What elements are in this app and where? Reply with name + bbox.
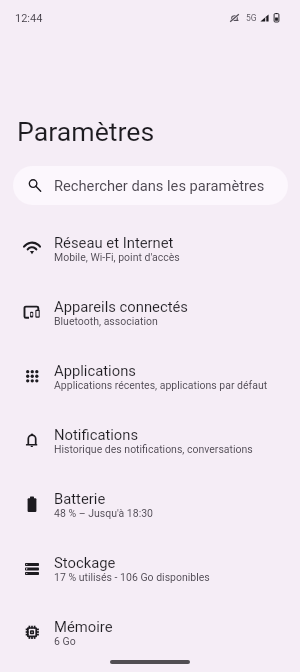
staticText: Appareils connectés (54, 298, 188, 315)
staticText: Mémoire (54, 618, 113, 635)
button[interactable]: Applications (0, 344, 300, 408)
staticText: Applications (54, 362, 136, 379)
staticText: Stockage (54, 554, 116, 571)
staticText: Historique des notifications, conversati… (54, 443, 253, 455)
staticText: 17 % utilisés - 106 Go disponibles (54, 571, 210, 583)
staticText: Mobile, Wi-Fi, point d'accès (54, 251, 180, 263)
button[interactable]: Stockage (0, 536, 300, 600)
staticText: 12:44 (15, 12, 43, 25)
staticText: 48 % – Jusqu'à 18:30 (54, 507, 153, 519)
staticText: Réseau et Internet (54, 234, 174, 251)
staticText: 5G (246, 13, 257, 23)
staticText: Applications récentes, applications par … (54, 379, 268, 391)
button[interactable]: Batterie (0, 472, 300, 536)
button[interactable]: Appareils connectés (0, 280, 300, 344)
staticText: Batterie (54, 490, 106, 507)
staticText: Bluetooth, association (54, 315, 158, 327)
staticText: Paramètres (17, 116, 155, 147)
button[interactable]: Notifications (0, 408, 300, 472)
staticText: 6 Go (54, 635, 76, 647)
button[interactable]: Mémoire (0, 600, 300, 664)
staticText: Rechercher dans les paramètres (54, 177, 265, 194)
button[interactable]: Réseau et Internet (0, 216, 300, 280)
button[interactable]: Rechercher dans les paramètres (13, 166, 288, 205)
staticText: Notifications (54, 426, 139, 443)
